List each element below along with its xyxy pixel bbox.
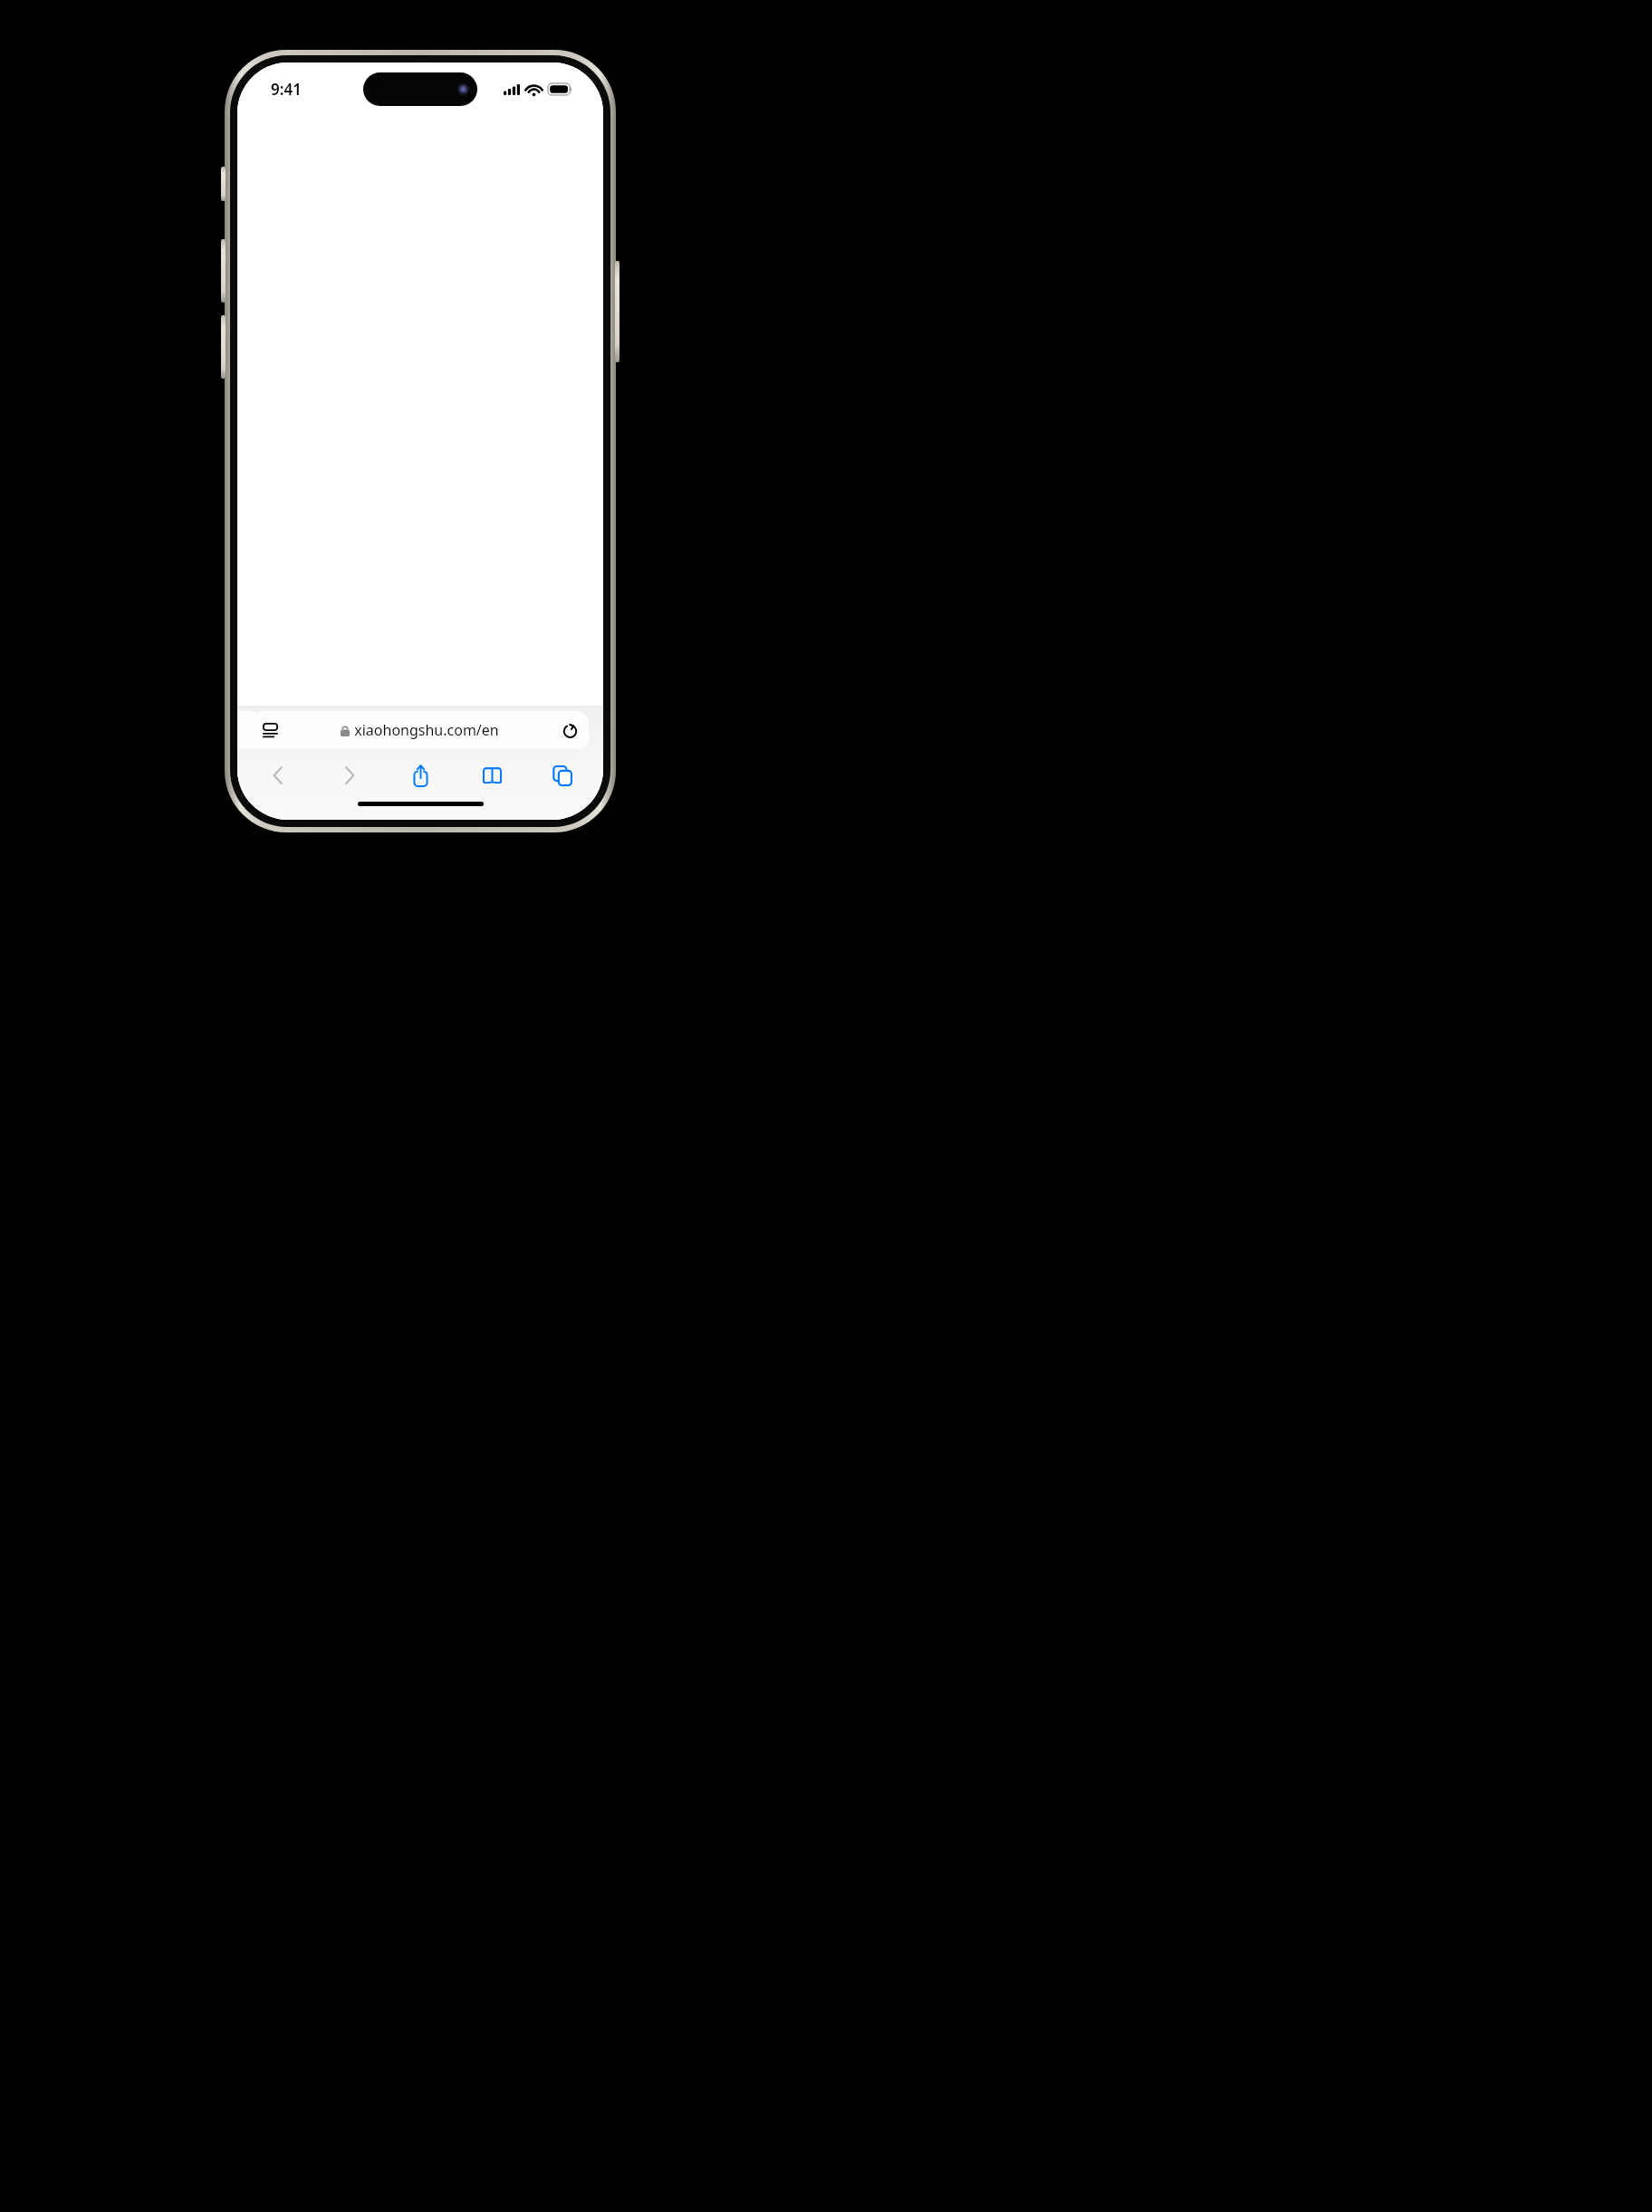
button[interactable]: Page settings xyxy=(252,711,288,749)
button[interactable]: Page settings xyxy=(252,711,589,749)
button[interactable]: Reload xyxy=(551,711,589,749)
button[interactable]: Share xyxy=(396,755,445,795)
button[interactable]: Back xyxy=(254,755,303,795)
button[interactable]: Bookmarks xyxy=(467,755,516,795)
button[interactable]: Forward xyxy=(325,755,374,795)
button[interactable]: Tabs xyxy=(538,755,587,795)
staticText: 9:41 xyxy=(271,79,302,100)
staticText: xiaohongshu.com/en xyxy=(354,720,499,740)
